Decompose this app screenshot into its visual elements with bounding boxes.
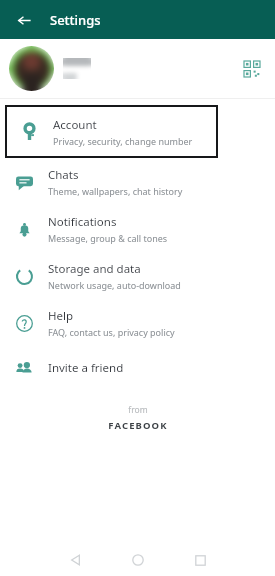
staticText: Theme, wallpapers, chat history [48, 185, 183, 197]
staticText: Settings [50, 11, 101, 29]
staticText: Chats [48, 167, 79, 183]
staticText: FAQ, contact us, privacy policy [48, 326, 175, 338]
button[interactable]: Home [107, 544, 169, 576]
button[interactable]: Notifications [0, 205, 275, 252]
button[interactable]: Account [5, 105, 218, 158]
staticText: Message, group & call tones [48, 232, 168, 244]
button[interactable]: QR code [0, 39, 275, 98]
button[interactable]: Chats [0, 158, 275, 205]
button[interactable]: Storage and data [0, 252, 275, 299]
button[interactable]: Back [45, 544, 107, 576]
staticText: Invite a friend [48, 360, 124, 376]
staticText: Notifications [48, 214, 117, 230]
button[interactable]: Help [0, 299, 275, 346]
button[interactable]: Back [8, 4, 40, 36]
staticText: from [128, 404, 148, 416]
staticText: Account [53, 117, 97, 133]
button[interactable]: Recent apps [169, 544, 231, 576]
button[interactable]: QR code [239, 56, 265, 82]
staticText: Network usage, auto-download [48, 279, 181, 291]
staticText: Storage and data [48, 261, 141, 277]
staticText: Help [48, 308, 74, 324]
button[interactable]: Invite a friend [0, 346, 275, 390]
staticText: FACEBOOK [108, 419, 168, 432]
staticText: Privacy, security, change number [53, 135, 193, 147]
